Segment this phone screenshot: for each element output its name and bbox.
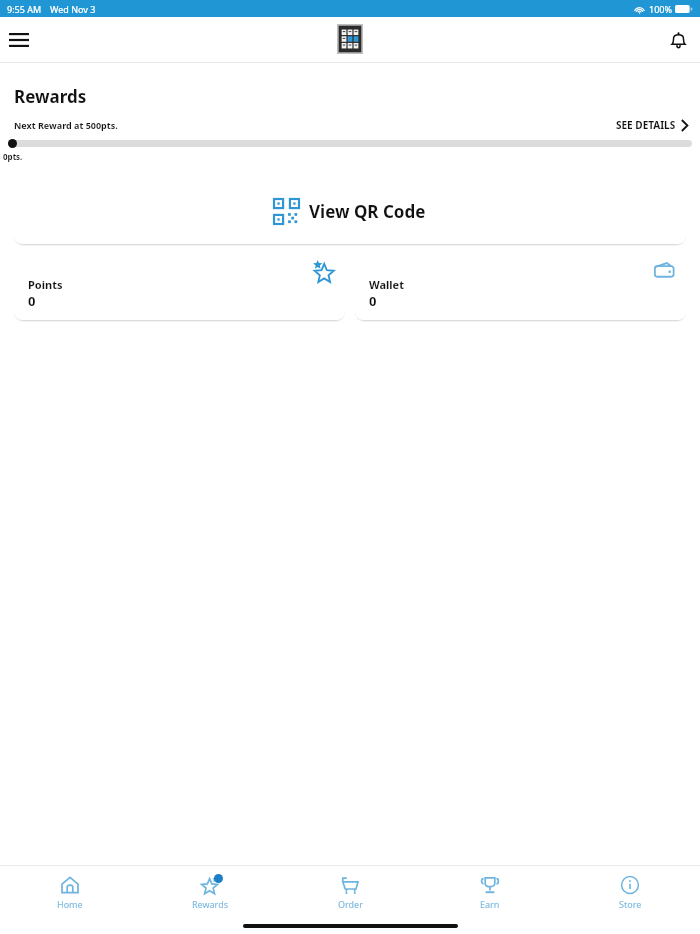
staticText: Rewards	[14, 85, 87, 108]
staticText: Order	[338, 898, 363, 910]
button[interactable]: Menu	[6, 27, 32, 53]
button[interactable]: Order	[280, 865, 420, 920]
staticText: Next Reward at 500pts.	[14, 119, 118, 131]
button[interactable]: Notifications	[664, 26, 692, 54]
button[interactable]: View QR Code	[14, 178, 686, 244]
staticText: Store	[619, 898, 642, 910]
staticText: 0	[369, 292, 377, 310]
staticText: Wed Nov 3	[50, 3, 96, 15]
staticText: View QR Code	[309, 200, 426, 223]
staticText: Earn	[480, 898, 500, 910]
button[interactable]: Store	[560, 865, 700, 920]
button[interactable]: Earn	[420, 865, 560, 920]
button[interactable]: SEE DETAILS	[614, 115, 690, 135]
staticText: Rewards	[192, 898, 229, 910]
staticText: Points	[28, 277, 63, 292]
staticText: Home	[57, 898, 83, 910]
staticText: SEE DETAILS	[616, 118, 676, 132]
staticText: 0	[28, 292, 36, 310]
button[interactable]: Wallet	[355, 254, 686, 320]
button[interactable]: Home	[0, 865, 140, 920]
button[interactable]: Rewards	[140, 865, 280, 920]
staticText: 100%	[649, 3, 672, 15]
button[interactable]: The Pie Guy logo	[337, 24, 363, 54]
button[interactable]: Points	[14, 254, 345, 320]
staticText: Wallet	[369, 277, 404, 292]
staticText: 0pts.	[3, 151, 23, 162]
staticText: 9:55 AM	[7, 3, 42, 15]
